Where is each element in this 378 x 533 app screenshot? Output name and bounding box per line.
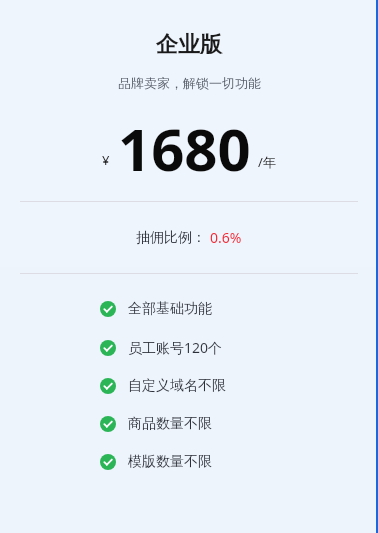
- staticText: 全部基础功能: [128, 300, 212, 318]
- staticText: 抽佣比例：: [136, 229, 206, 247]
- button[interactable]: Included: [0, 453, 378, 471]
- staticText: 品牌卖家，解锁一切功能: [118, 75, 261, 91]
- button[interactable]: Included: [0, 300, 378, 318]
- staticText: ¥: [102, 151, 110, 169]
- other: Included: [100, 340, 116, 356]
- button[interactable]: Included: [0, 377, 378, 395]
- staticText: /年: [258, 153, 276, 171]
- other: Included: [100, 378, 116, 394]
- staticText: 企业版: [156, 31, 222, 59]
- other: Included: [100, 454, 116, 470]
- staticText: 员工账号120个: [128, 338, 223, 357]
- other: Included: [100, 301, 116, 317]
- staticText: 商品数量不限: [128, 415, 212, 433]
- staticText: 自定义域名不限: [128, 377, 226, 395]
- button[interactable]: Included: [0, 338, 378, 357]
- staticText: 模版数量不限: [128, 453, 212, 471]
- button[interactable]: Included: [0, 415, 378, 433]
- staticText: 0.6%: [210, 228, 242, 247]
- staticText: 1680: [118, 109, 251, 181]
- other: Included: [100, 416, 116, 432]
